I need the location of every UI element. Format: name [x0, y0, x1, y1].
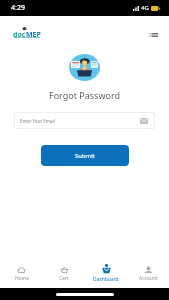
staticText: doc — [13, 30, 26, 40]
button[interactable]: Enter Your Email — [14, 112, 155, 129]
staticText: Home — [15, 275, 29, 282]
button[interactable]: Menu — [146, 28, 160, 42]
staticText: Cart — [59, 275, 69, 282]
button[interactable]: Home — [0, 261, 43, 287]
staticText: MEP — [26, 30, 41, 40]
staticText: Enter Your Email — [20, 118, 55, 124]
staticText: Dashboard — [93, 276, 119, 283]
staticText: Account — [139, 275, 158, 282]
staticText: 4G — [141, 4, 149, 12]
button[interactable]: Account — [127, 261, 169, 287]
button[interactable]: Cart — [43, 261, 85, 287]
staticText: Forgot Password — [0, 89, 169, 101]
button[interactable]: Submit — [41, 145, 129, 166]
staticText: Submit — [75, 152, 96, 160]
button[interactable]: Dashboard — [85, 261, 127, 287]
staticText: 4:29 — [11, 3, 25, 13]
